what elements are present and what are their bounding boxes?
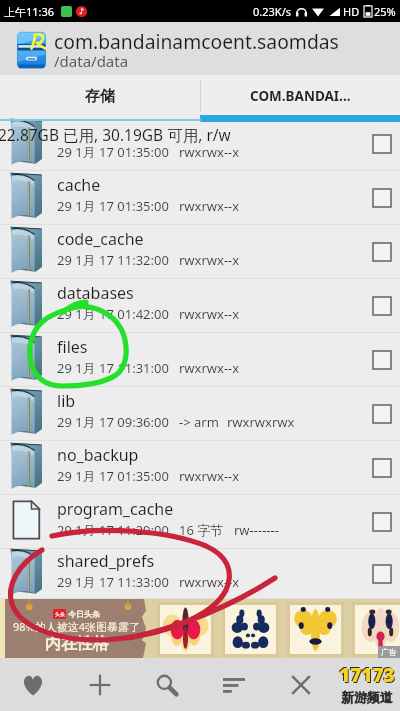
button[interactable]: Favorites	[0, 658, 66, 711]
button[interactable]: Add	[66, 658, 133, 711]
button[interactable]: com.bandainamcoent.saomdas	[0, 22, 400, 75]
staticText: COM.BANDAI...	[250, 87, 351, 105]
staticText: 25%	[374, 4, 396, 19]
staticText: cache	[57, 174, 101, 196]
staticText: rwxrwx--x	[179, 359, 240, 377]
staticText: /data/data	[54, 51, 129, 71]
button[interactable]: Select databases	[373, 297, 391, 315]
staticText: code_cache	[57, 228, 144, 250]
staticText: 22.87GB 已用, 30.19GB 可用, r/w	[0, 124, 231, 145]
staticText: 今日头条	[68, 609, 100, 619]
staticText: 29 1月 17 01:35:00	[57, 143, 169, 161]
button[interactable]: Close	[267, 658, 334, 711]
staticText: 17173	[339, 662, 395, 688]
staticText: 29 1月 17 11:29:00	[57, 521, 169, 539]
staticText: 新游频道	[341, 689, 393, 705]
staticText: files	[57, 336, 88, 358]
button[interactable]: Select no_backup	[373, 459, 391, 477]
staticText: rwxrwx--x	[179, 305, 240, 323]
staticText: databases	[57, 282, 134, 304]
button[interactable]: files	[0, 333, 400, 387]
staticText: 29 1月 17 09:36:00	[57, 413, 169, 431]
button[interactable]: Select	[373, 135, 391, 153]
button[interactable]: Select lib	[373, 405, 391, 423]
staticText: -> arm	[179, 413, 219, 431]
staticText: 16 字节	[179, 521, 224, 539]
staticText: com.bandainamcoent.saomdas	[54, 28, 339, 54]
staticText: rwxrwx--x	[179, 143, 240, 161]
staticText: 29 1月 17 11:32:00	[57, 251, 169, 269]
staticText: 29 1月 17 11:33:00	[57, 573, 169, 591]
staticText: 广告	[381, 647, 397, 657]
button[interactable]: Select code_cache	[373, 243, 391, 261]
staticText: rwxrwxrwx	[227, 413, 295, 431]
button[interactable]: Select program_cache	[373, 513, 391, 531]
staticText: 存储	[85, 87, 115, 106]
button[interactable]: lib	[0, 387, 400, 441]
button[interactable]: databases	[0, 279, 400, 333]
staticText: shared_prefs	[57, 550, 155, 572]
staticText: rwxrwx--x	[179, 573, 240, 591]
button[interactable]: cache	[0, 171, 400, 225]
staticText: 29 1月 17 11:31:00	[57, 359, 169, 377]
staticText: lib	[57, 390, 76, 412]
button[interactable]: 头条	[0, 599, 400, 658]
staticText: 98%的人被这4张图暴露了	[13, 619, 141, 634]
button[interactable]: Sort	[200, 658, 267, 711]
button[interactable]: Select shared_prefs	[373, 565, 391, 583]
staticText: 0.23K/s	[253, 4, 291, 19]
button[interactable]: program_cache	[0, 495, 400, 549]
staticText: 17173	[338, 661, 394, 687]
button[interactable]: code_cache	[0, 225, 400, 279]
staticText: 17173	[340, 663, 396, 689]
staticText: 29 1月 17 01:35:00	[57, 467, 169, 485]
button[interactable]: COM.BANDAI...	[200, 75, 400, 117]
button[interactable]: 29 1月 17 01:35:00	[0, 117, 400, 171]
button[interactable]: Select cache	[373, 189, 391, 207]
staticText: 头条	[55, 611, 65, 617]
button[interactable]: Select files	[373, 351, 391, 369]
button[interactable]: Search	[133, 658, 200, 711]
staticText: no_backup	[57, 444, 139, 466]
staticText: HD	[343, 4, 360, 19]
staticText: program_cache	[57, 498, 174, 520]
staticText: rwxrwx--x	[179, 467, 240, 485]
staticText: rwxrwx--x	[179, 197, 240, 215]
staticText: rwxrwx--x	[179, 251, 240, 269]
staticText: rw-------	[234, 521, 279, 539]
button[interactable]: shared_prefs	[0, 549, 400, 599]
staticText: 内在性格	[45, 634, 109, 654]
staticText: ♪	[79, 7, 85, 16]
button[interactable]: 存储	[0, 75, 200, 117]
staticText: 上午11:36	[4, 4, 55, 19]
staticText: 29 1月 17 01:35:00	[57, 197, 169, 215]
staticText: 29 1月 17 01:42:00	[57, 305, 169, 323]
button[interactable]: no_backup	[0, 441, 400, 495]
